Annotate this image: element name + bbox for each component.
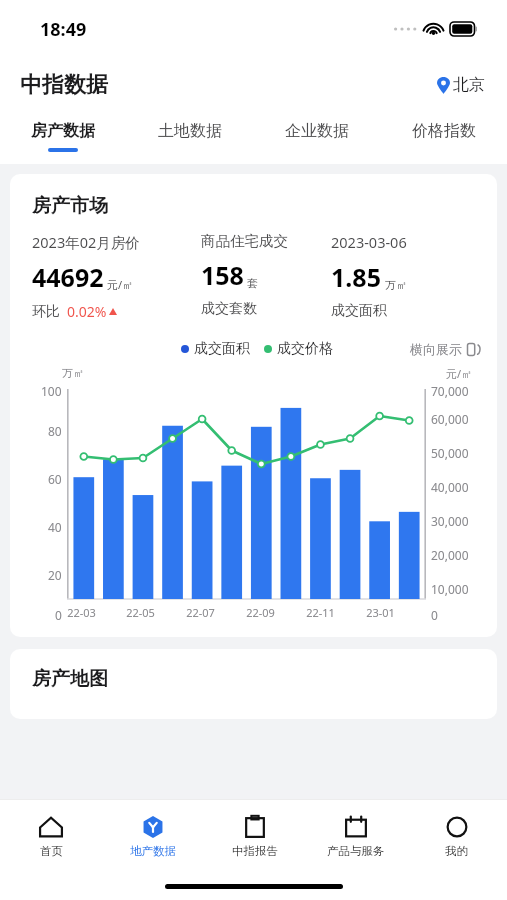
staticText: 套 bbox=[247, 276, 258, 290]
staticText: 30,000 bbox=[431, 513, 469, 529]
staticText: 22-05 bbox=[126, 605, 155, 620]
staticText: 0 bbox=[431, 607, 438, 623]
staticText: 地产数据 bbox=[130, 844, 176, 858]
staticText: 158 bbox=[201, 258, 244, 292]
button[interactable]: 房产数据 bbox=[0, 112, 126, 164]
staticText: 成交套数 bbox=[201, 300, 257, 318]
staticText: 100 bbox=[41, 383, 62, 399]
button[interactable]: 地产数据 bbox=[102, 800, 204, 872]
staticText: 44692 bbox=[32, 260, 104, 294]
staticText: 企业数据 bbox=[285, 121, 349, 141]
staticText: 18:49 bbox=[40, 17, 87, 42]
staticText: 70,000 bbox=[431, 383, 469, 399]
staticText: 0.02% bbox=[67, 302, 107, 321]
button[interactable]: 价格指数 bbox=[380, 112, 507, 164]
staticText: 元/㎡ bbox=[107, 277, 134, 292]
staticText: 我的 bbox=[445, 844, 468, 858]
staticText: 土地数据 bbox=[158, 121, 222, 141]
staticText: 中指数据 bbox=[20, 71, 108, 99]
staticText: 20 bbox=[48, 567, 62, 583]
staticText: 22-07 bbox=[186, 605, 215, 620]
staticText: 万㎡ bbox=[385, 278, 407, 292]
button[interactable]: 我的 bbox=[406, 800, 507, 872]
staticText: 40 bbox=[48, 519, 62, 535]
staticText: 23-01 bbox=[366, 605, 395, 620]
staticText: 房产地图 bbox=[32, 667, 108, 691]
button[interactable]: 中指报告 bbox=[204, 800, 305, 872]
staticText: 60 bbox=[48, 471, 62, 487]
staticText: 房产市场 bbox=[32, 194, 108, 218]
button[interactable]: 横向展示 bbox=[410, 341, 481, 357]
staticText: 80 bbox=[48, 423, 62, 439]
staticText: 50,000 bbox=[431, 445, 469, 461]
staticText: 2023年02月房价 bbox=[32, 232, 140, 252]
button[interactable]: 首页 bbox=[0, 800, 102, 872]
staticText: 60,000 bbox=[431, 411, 469, 427]
staticText: 10,000 bbox=[431, 581, 469, 597]
staticText: 成交面积 bbox=[331, 302, 387, 320]
staticText: 北京 bbox=[453, 75, 485, 95]
staticText: 22-03 bbox=[67, 605, 96, 620]
staticText: 40,000 bbox=[431, 479, 469, 495]
button[interactable]: 产品与服务 bbox=[305, 800, 406, 872]
staticText: 成交面积 bbox=[194, 340, 250, 358]
staticText: 20,000 bbox=[431, 547, 469, 563]
staticText: 环比 bbox=[32, 303, 60, 321]
button[interactable]: 企业数据 bbox=[253, 112, 380, 164]
staticText: 横向展示 bbox=[410, 341, 462, 357]
staticText: 2023-03-06 bbox=[331, 232, 407, 252]
staticText: 中指报告 bbox=[232, 844, 278, 858]
staticText: 1.85 bbox=[331, 260, 381, 294]
staticText: 首页 bbox=[40, 844, 63, 858]
staticText: 房产数据 bbox=[31, 121, 95, 141]
button[interactable]: 北京 bbox=[437, 75, 485, 95]
staticText: 产品与服务 bbox=[327, 844, 385, 858]
button[interactable]: 土地数据 bbox=[126, 112, 253, 164]
staticText: 22-09 bbox=[246, 605, 275, 620]
staticText: 价格指数 bbox=[412, 121, 476, 141]
staticText: 万㎡ bbox=[62, 366, 84, 380]
staticText: 成交价格 bbox=[277, 340, 333, 358]
staticText: 元/㎡ bbox=[446, 366, 473, 381]
staticText: 22-11 bbox=[306, 605, 335, 620]
staticText: 0 bbox=[55, 607, 62, 623]
staticText: 商品住宅成交 bbox=[201, 232, 288, 250]
